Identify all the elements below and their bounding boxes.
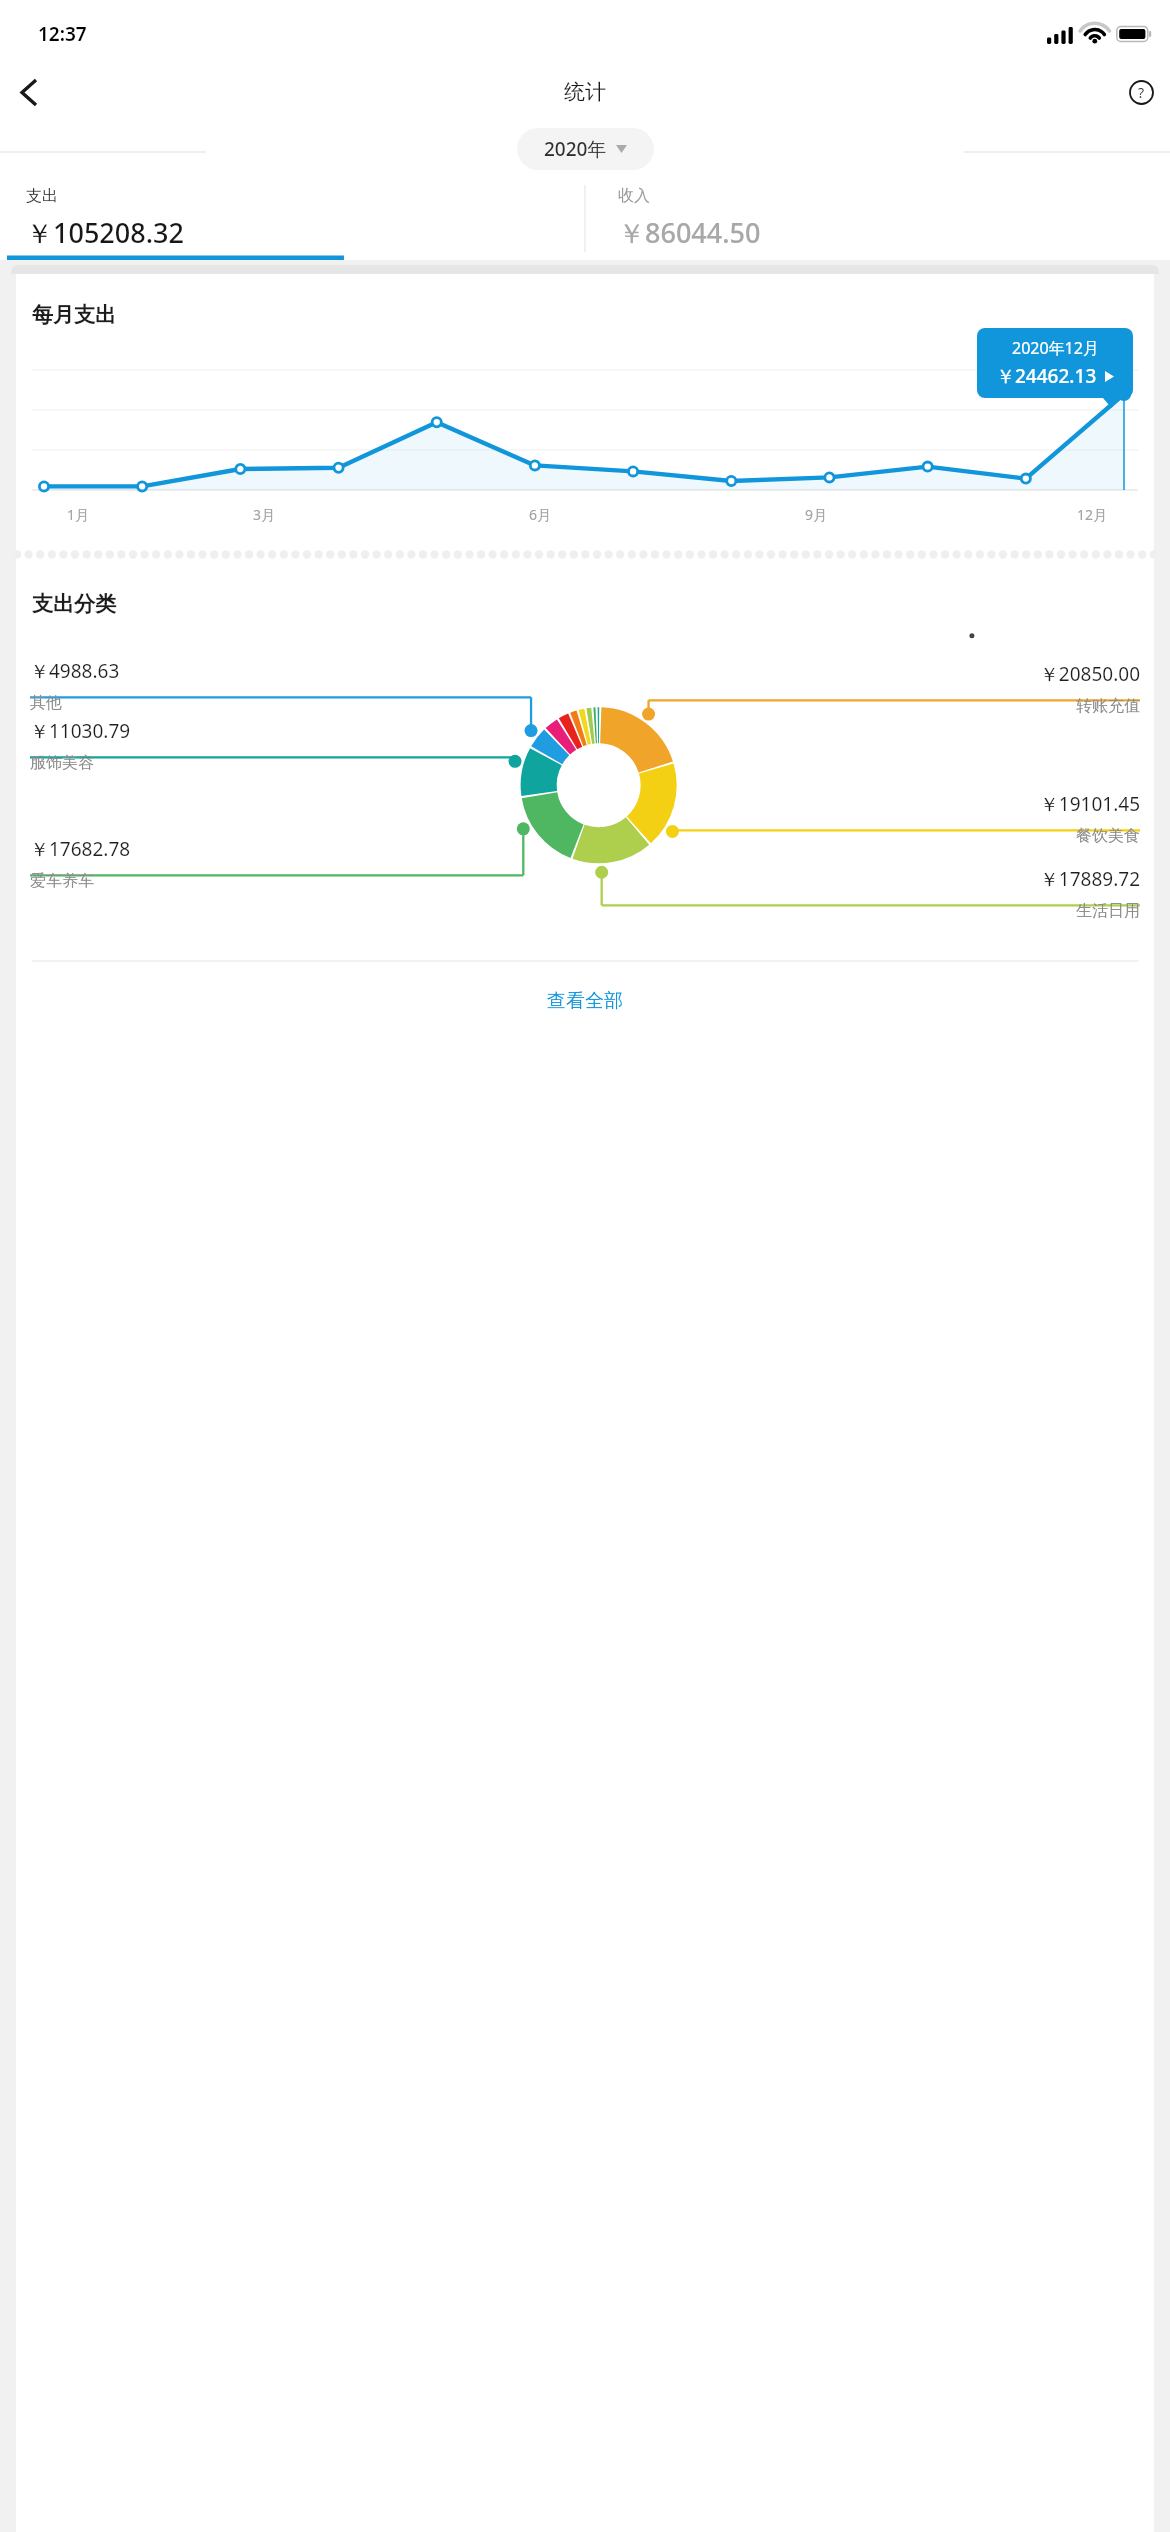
staticText: 生活日用 [1076, 901, 1140, 921]
staticText: 服饰美容 [30, 753, 94, 773]
staticText: ￥19101.45 [1039, 791, 1140, 817]
staticText: 爱车养车 [30, 871, 94, 891]
staticText: ? [1138, 83, 1145, 102]
button[interactable]: 支出 [0, 177, 585, 260]
button[interactable]: 查看全部 [16, 962, 1154, 1040]
staticText: 收入 [618, 186, 650, 206]
staticText: 支出分类 [32, 591, 116, 617]
staticText: 6月 [529, 505, 552, 524]
staticText: 2020年 [544, 136, 607, 162]
staticText: 转账充值 [1076, 696, 1140, 716]
staticText: 12:37 [38, 21, 87, 47]
button[interactable]: 收入 [585, 177, 1170, 260]
staticText: ￥17682.78 [30, 836, 131, 862]
staticText: 12月 [1077, 505, 1108, 524]
button[interactable]: Back [0, 63, 58, 121]
staticText: 1月 [67, 505, 90, 524]
button[interactable]: 2020年 [517, 128, 654, 170]
staticText: 查看全部 [547, 989, 623, 1013]
staticText: 2020年12月 [1012, 337, 1099, 359]
staticText: ￥4988.63 [30, 658, 120, 684]
staticText: 每月支出 [32, 302, 116, 328]
staticText: 9月 [805, 505, 828, 524]
button[interactable]: 2020年12月 [977, 328, 1133, 398]
staticText: ￥86044.50 [618, 214, 761, 251]
staticText: ￥20850.00 [1039, 661, 1140, 687]
staticText: 统计 [564, 79, 606, 105]
staticText: ￥17889.72 [1039, 866, 1140, 892]
staticText: ￥24462.13 [996, 363, 1097, 389]
button[interactable]: Help [1112, 63, 1170, 121]
staticText: 支出 [26, 186, 58, 206]
staticText: 3月 [253, 505, 276, 524]
staticText: 其他 [30, 693, 62, 713]
staticText: ￥11030.79 [30, 718, 131, 744]
staticText: ￥105208.32 [26, 214, 184, 251]
staticText: 餐饮美食 [1076, 826, 1140, 846]
